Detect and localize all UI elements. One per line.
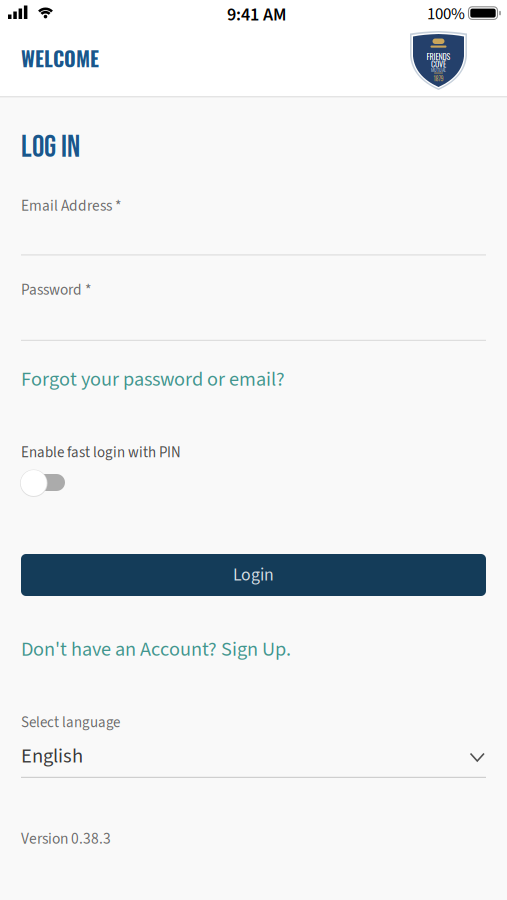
staticText: 100% — [427, 2, 465, 26]
staticText: Login — [233, 562, 274, 588]
staticText: 9:41 AM — [227, 2, 287, 28]
staticText: Don't have an Account? Sign Up. — [21, 635, 291, 664]
staticText: Version 0.38.3 — [21, 828, 111, 850]
button[interactable]: Email Address * — [21, 195, 486, 255]
button[interactable]: Forgot your password or email? — [21, 365, 285, 394]
staticText: Enable fast login with PIN — [21, 442, 181, 463]
staticText: Select language — [21, 712, 120, 733]
button[interactable]: Don't have an Account? Sign Up. — [21, 635, 291, 664]
staticText: FRIENDS — [426, 50, 450, 62]
button[interactable]: English — [21, 742, 486, 778]
staticText: MUTUAL — [431, 66, 446, 73]
staticText: Email Address * — [21, 195, 121, 217]
button[interactable]: FRIENDS — [410, 31, 467, 90]
staticText: English — [21, 741, 83, 771]
button[interactable] — [20, 469, 66, 497]
staticText: LOG IN — [21, 129, 80, 166]
staticText: Forgot your password or email? — [21, 365, 285, 394]
staticText: 1879 — [433, 74, 443, 83]
staticText: COVE — [431, 58, 446, 70]
button[interactable]: Password * — [21, 279, 486, 341]
staticText: Password * — [21, 279, 91, 301]
staticText: WELCOME — [21, 43, 99, 73]
button[interactable]: Login — [21, 554, 486, 596]
